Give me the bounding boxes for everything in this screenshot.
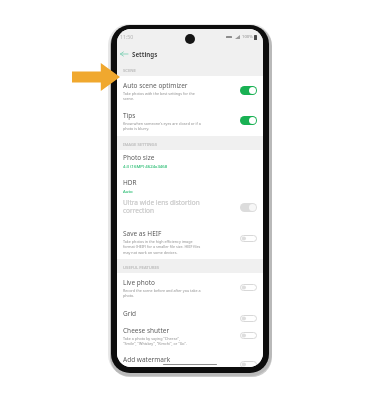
staticText: SCENE [123, 68, 136, 74]
staticText: Auto scene optimizer [123, 81, 236, 90]
button[interactable]: Grid [117, 303, 263, 322]
staticText: Tips [123, 111, 236, 120]
button[interactable]: Live photo [117, 273, 263, 303]
button[interactable]: Auto scene optimizer [117, 76, 263, 107]
staticText: USEFUL FEATURES [123, 265, 160, 271]
other: Highlight arrow [72, 63, 120, 91]
button[interactable]: Toggle off [240, 284, 257, 291]
button[interactable]: Ultra wide lens distortion correction [117, 198, 263, 225]
button[interactable]: Toggle off [240, 361, 257, 367]
staticText: HDR [123, 178, 137, 187]
staticText: Settings [132, 50, 158, 58]
staticText: 100% [242, 34, 253, 40]
staticText: Take photos in the high efficiency image… [123, 239, 202, 255]
staticText: Save as HEIF [123, 229, 236, 238]
button[interactable]: Toggle disabled [240, 203, 257, 212]
staticText: Cheese shutter [123, 326, 236, 335]
button[interactable]: Cheese shutter [117, 322, 263, 350]
button[interactable]: Toggle off [240, 235, 257, 242]
staticText: Take photos with the best settings for t… [123, 91, 202, 101]
staticText: Take a photo by saying "Cheese", "Smile"… [123, 336, 193, 346]
button[interactable]: Back [119, 49, 129, 59]
button[interactable]: Add watermark [117, 350, 263, 367]
staticText: Live photo [123, 278, 236, 287]
staticText: Know when someone's eyes are closed or i… [123, 121, 202, 131]
staticText: Record the scene before and after you ta… [123, 288, 204, 298]
staticText: 11:50 [120, 33, 134, 40]
staticText: Photo size [123, 153, 155, 162]
button[interactable]: Toggle off [240, 315, 257, 322]
staticText: Auto [123, 188, 133, 194]
button[interactable]: Save as HEIF [117, 225, 263, 259]
button[interactable]: HDR [117, 174, 263, 198]
staticText: Grid [123, 309, 236, 318]
staticText: 4:3 (16MP) 4624x3468 [123, 163, 168, 169]
button[interactable]: Photo size [117, 150, 263, 174]
button[interactable]: Toggle off [240, 332, 257, 339]
button[interactable]: Tips [117, 107, 263, 136]
staticText: Add watermark [123, 355, 236, 362]
button[interactable]: Toggle on [240, 116, 257, 125]
staticText: IMAGE SETTINGS [123, 142, 157, 148]
button[interactable]: Toggle on [240, 86, 257, 95]
staticText: Ultra wide lens distortion correction [123, 198, 204, 215]
